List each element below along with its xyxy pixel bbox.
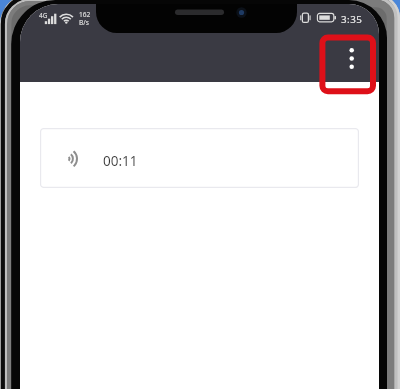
staticText: 00:11 [103, 152, 138, 170]
button[interactable]: More options [327, 36, 375, 82]
staticText: 4G [39, 11, 48, 20]
staticText: 162 [79, 10, 91, 19]
staticText: B/s [79, 18, 89, 27]
button[interactable]: 00:11 [40, 128, 359, 188]
staticText: 3:35 [341, 13, 363, 26]
